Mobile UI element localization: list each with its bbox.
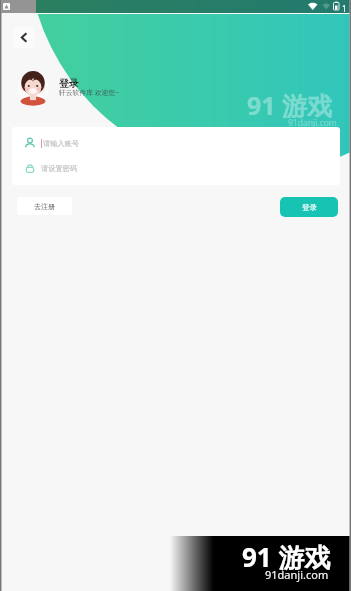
button[interactable]: 登录 (280, 197, 338, 217)
staticText: 去注册 (34, 202, 55, 211)
staticText: 请输入账号 (43, 139, 79, 148)
staticText: 轩云软件库 欢迎您~ (59, 88, 120, 97)
staticText: 登录 (302, 203, 317, 212)
button[interactable]: 请输入账号 (24, 131, 340, 155)
button[interactable]: Back (13, 27, 34, 48)
staticText: 91 游戏 (242, 539, 331, 575)
button[interactable]: 请设置密码 (24, 156, 340, 180)
button[interactable]: 去注册 (17, 197, 72, 215)
staticText: 91 游戏 (247, 88, 333, 122)
staticText: 登录 (59, 77, 79, 90)
staticText: 1 (342, 3, 347, 14)
staticText: 91danji.com (288, 117, 337, 129)
staticText: 请设置密码 (41, 164, 77, 173)
staticText: 91danji.com (265, 567, 329, 582)
